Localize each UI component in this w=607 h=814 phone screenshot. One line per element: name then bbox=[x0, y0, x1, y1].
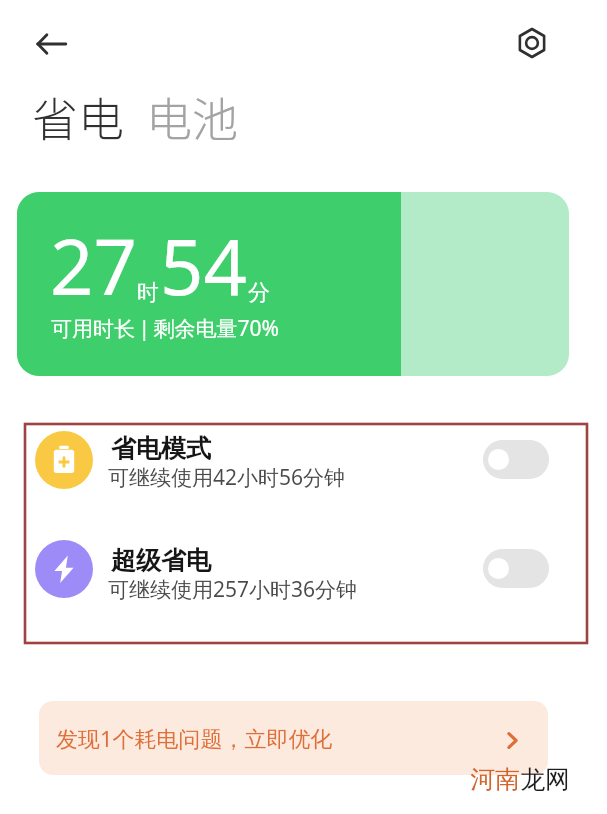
staticText: 分 bbox=[248, 279, 270, 307]
button[interactable]: Settings bbox=[509, 20, 555, 66]
button[interactable]: Toggle 超级省电 bbox=[483, 549, 549, 588]
button[interactable]: Toggle 省电模式 bbox=[483, 440, 549, 479]
staticText: 电池 bbox=[146, 83, 238, 150]
button[interactable]: 省电 bbox=[32, 83, 124, 150]
staticText: 时 bbox=[137, 279, 159, 307]
staticText: 54 bbox=[160, 214, 247, 318]
button[interactable]: 省电模式 bbox=[25, 424, 587, 533]
staticText: 省电模式 bbox=[111, 433, 211, 464]
button[interactable]: Back bbox=[29, 21, 75, 67]
staticText: 河南 bbox=[470, 764, 520, 795]
staticText: 省电 bbox=[32, 83, 124, 150]
staticText: 可继续使用42小时56分钟 bbox=[108, 463, 346, 492]
staticText: 龙网 bbox=[520, 764, 570, 795]
staticText: 可用时长 | 剩余电量70% bbox=[51, 314, 280, 343]
staticText: 超级省电 bbox=[111, 545, 211, 576]
staticText: 可继续使用257小时36分钟 bbox=[108, 575, 358, 604]
staticText: 27 bbox=[50, 214, 137, 318]
staticText: 发现1个耗电问题，立即优化 bbox=[56, 723, 333, 753]
button[interactable]: 超级省电 bbox=[25, 533, 587, 642]
button[interactable]: 发现1个耗电问题，立即优化 bbox=[39, 701, 548, 775]
button[interactable]: 27 bbox=[17, 192, 569, 376]
button[interactable]: 电池 bbox=[146, 83, 238, 150]
